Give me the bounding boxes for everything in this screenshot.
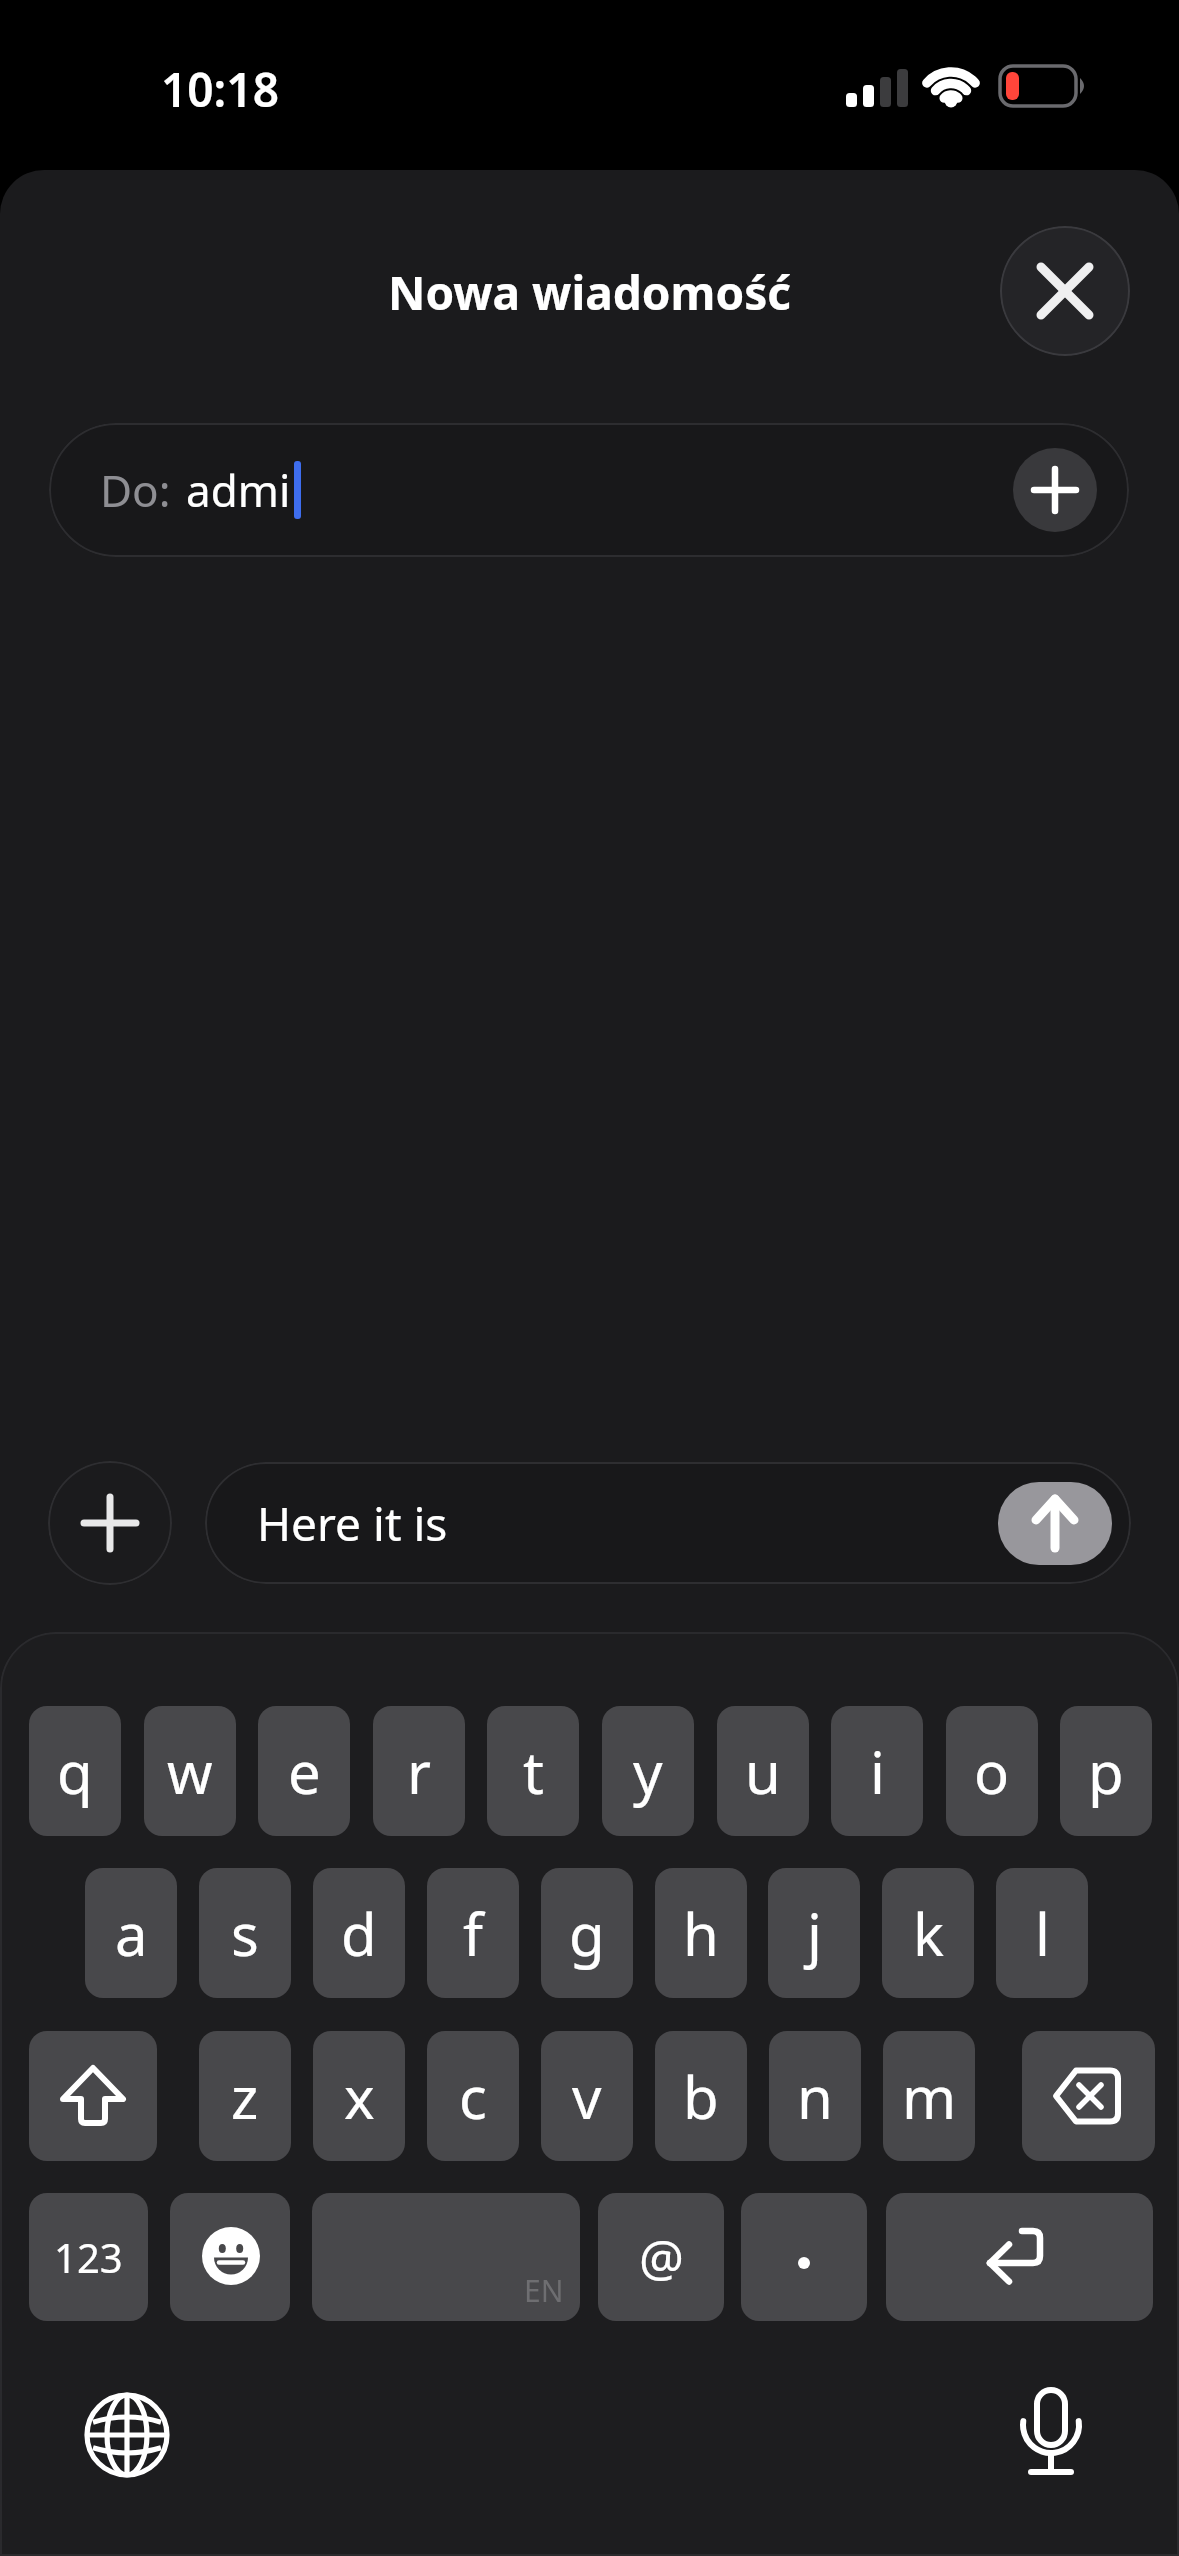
staticText: a	[115, 1894, 148, 1973]
staticText: c	[459, 2057, 487, 2136]
staticText: s	[231, 1894, 259, 1973]
button[interactable]: c	[427, 2031, 519, 2161]
button[interactable]	[170, 2193, 290, 2321]
button[interactable]: q	[29, 1706, 121, 1836]
staticText: d	[341, 1894, 377, 1973]
staticText: y	[633, 1732, 663, 1811]
button[interactable]: w	[144, 1706, 236, 1836]
button[interactable]: o	[946, 1706, 1038, 1836]
button[interactable]: v	[541, 2031, 633, 2161]
button[interactable]: h	[655, 1868, 747, 1998]
staticText: v	[572, 2057, 602, 2136]
button[interactable]	[1022, 2031, 1155, 2161]
staticText: u	[745, 1732, 781, 1811]
staticText: m	[902, 2057, 957, 2136]
staticText: Do:	[100, 460, 171, 520]
button[interactable]: b	[655, 2031, 747, 2161]
button[interactable]: s	[199, 1868, 291, 1998]
button[interactable]: i	[831, 1706, 923, 1836]
button[interactable]: @	[598, 2193, 724, 2321]
button[interactable]	[886, 2193, 1153, 2321]
button[interactable]: m	[883, 2031, 975, 2161]
button[interactable]: EN	[312, 2193, 580, 2321]
button[interactable]	[29, 2031, 157, 2161]
staticText: f	[463, 1894, 483, 1973]
button[interactable]: 123	[29, 2193, 148, 2321]
button[interactable]: Here it is	[205, 1462, 1131, 1584]
staticText: q	[57, 1732, 93, 1811]
staticText: z	[231, 2057, 259, 2136]
button[interactable]	[998, 1482, 1112, 1565]
staticText: b	[683, 2057, 719, 2136]
button[interactable]: e	[258, 1706, 350, 1836]
button[interactable]	[1013, 448, 1097, 532]
button[interactable]	[1001, 2384, 1101, 2484]
staticText: 123	[54, 2230, 123, 2284]
staticText: j	[807, 1894, 822, 1973]
button[interactable]	[741, 2193, 867, 2321]
button[interactable]: j	[768, 1868, 860, 1998]
staticText: admi	[186, 460, 291, 520]
button[interactable]: a	[85, 1868, 177, 1998]
staticText: g	[569, 1894, 605, 1973]
button[interactable]: z	[199, 2031, 291, 2161]
staticText: i	[870, 1732, 885, 1811]
staticText: Nowa wiadomość	[388, 261, 792, 321]
staticText: h	[683, 1894, 719, 1973]
button[interactable]	[1000, 226, 1130, 356]
staticText: @	[639, 2223, 684, 2291]
button[interactable]: l	[996, 1868, 1088, 1998]
button[interactable]: r	[373, 1706, 465, 1836]
button[interactable]: p	[1060, 1706, 1152, 1836]
staticText: Here it is	[257, 1492, 448, 1555]
button[interactable]: g	[541, 1868, 633, 1998]
staticText: w	[167, 1732, 213, 1811]
button[interactable]: f	[427, 1868, 519, 1998]
staticText: EN	[524, 2270, 564, 2311]
button[interactable]: d	[313, 1868, 405, 1998]
staticText: e	[288, 1732, 321, 1811]
button[interactable]: t	[487, 1706, 579, 1836]
button[interactable]: x	[313, 2031, 405, 2161]
staticText: x	[344, 2057, 375, 2136]
button[interactable]: u	[717, 1706, 809, 1836]
staticText: p	[1088, 1732, 1124, 1811]
staticText: l	[1035, 1894, 1050, 1973]
staticText: r	[407, 1732, 431, 1811]
staticText: k	[913, 1894, 944, 1973]
staticText: o	[974, 1732, 1010, 1811]
staticText: 10:18	[161, 58, 279, 114]
button[interactable]: Do:	[49, 423, 1129, 557]
button[interactable]: k	[882, 1868, 974, 1998]
button[interactable]	[48, 1461, 172, 1585]
staticText: t	[523, 1732, 544, 1811]
button[interactable]: y	[602, 1706, 694, 1836]
button[interactable]	[78, 2385, 178, 2485]
button[interactable]: n	[769, 2031, 861, 2161]
staticText: n	[797, 2057, 833, 2136]
